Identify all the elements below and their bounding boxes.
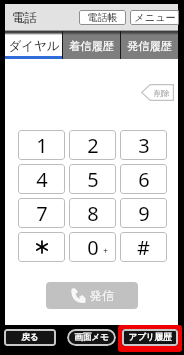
staticText: 着信履歴	[69, 39, 114, 53]
button[interactable]: 着信履歴	[62, 31, 120, 59]
staticText: 4	[36, 166, 48, 193]
button[interactable]: 5	[69, 164, 116, 194]
staticText: メニュー	[134, 11, 176, 24]
button[interactable]: 3	[120, 130, 167, 160]
staticText: 画面メモ	[74, 332, 109, 343]
staticText: 3	[138, 132, 150, 159]
button[interactable]: ダイヤル	[5, 31, 62, 59]
button[interactable]: 画面メモ	[67, 329, 116, 346]
button[interactable]: 9	[120, 198, 167, 228]
button[interactable]: 0	[69, 232, 116, 262]
staticText: 2	[87, 132, 99, 159]
button[interactable]: 4	[18, 164, 65, 194]
staticText: 電話帳	[87, 11, 118, 24]
button[interactable]: アプリ履歴	[122, 329, 178, 346]
staticText: 9	[138, 200, 150, 227]
button[interactable]: 7	[18, 198, 65, 228]
staticText: 発信履歴	[127, 39, 172, 53]
staticText: アプリ履歴	[128, 332, 172, 343]
button[interactable]: メニュー	[130, 10, 179, 25]
button[interactable]: 発信	[46, 282, 138, 309]
button[interactable]: 1	[18, 130, 65, 160]
staticText: 8	[87, 200, 99, 227]
button[interactable]: 2	[69, 130, 116, 160]
staticText: 戻る	[21, 332, 39, 343]
button[interactable]: 8	[69, 198, 116, 228]
staticText: ダイヤル	[8, 38, 60, 54]
button[interactable]: 発信履歴	[120, 31, 178, 59]
staticText: 7	[36, 200, 48, 227]
button[interactable]: 削除	[141, 84, 174, 101]
button[interactable]	[18, 232, 65, 262]
staticText: 1	[36, 132, 48, 159]
staticText: #	[137, 234, 150, 261]
staticText: 電話	[12, 10, 37, 26]
staticText: 5	[87, 166, 99, 193]
staticText: +	[103, 245, 108, 256]
button[interactable]: 電話帳	[79, 10, 126, 25]
staticText: 6	[138, 166, 150, 193]
staticText: 削除	[154, 88, 170, 98]
staticText: 発信	[90, 288, 114, 303]
button[interactable]: 6	[120, 164, 167, 194]
staticText: 0	[87, 234, 99, 261]
button[interactable]: #	[120, 232, 167, 262]
button[interactable]: 戻る	[4, 329, 56, 346]
